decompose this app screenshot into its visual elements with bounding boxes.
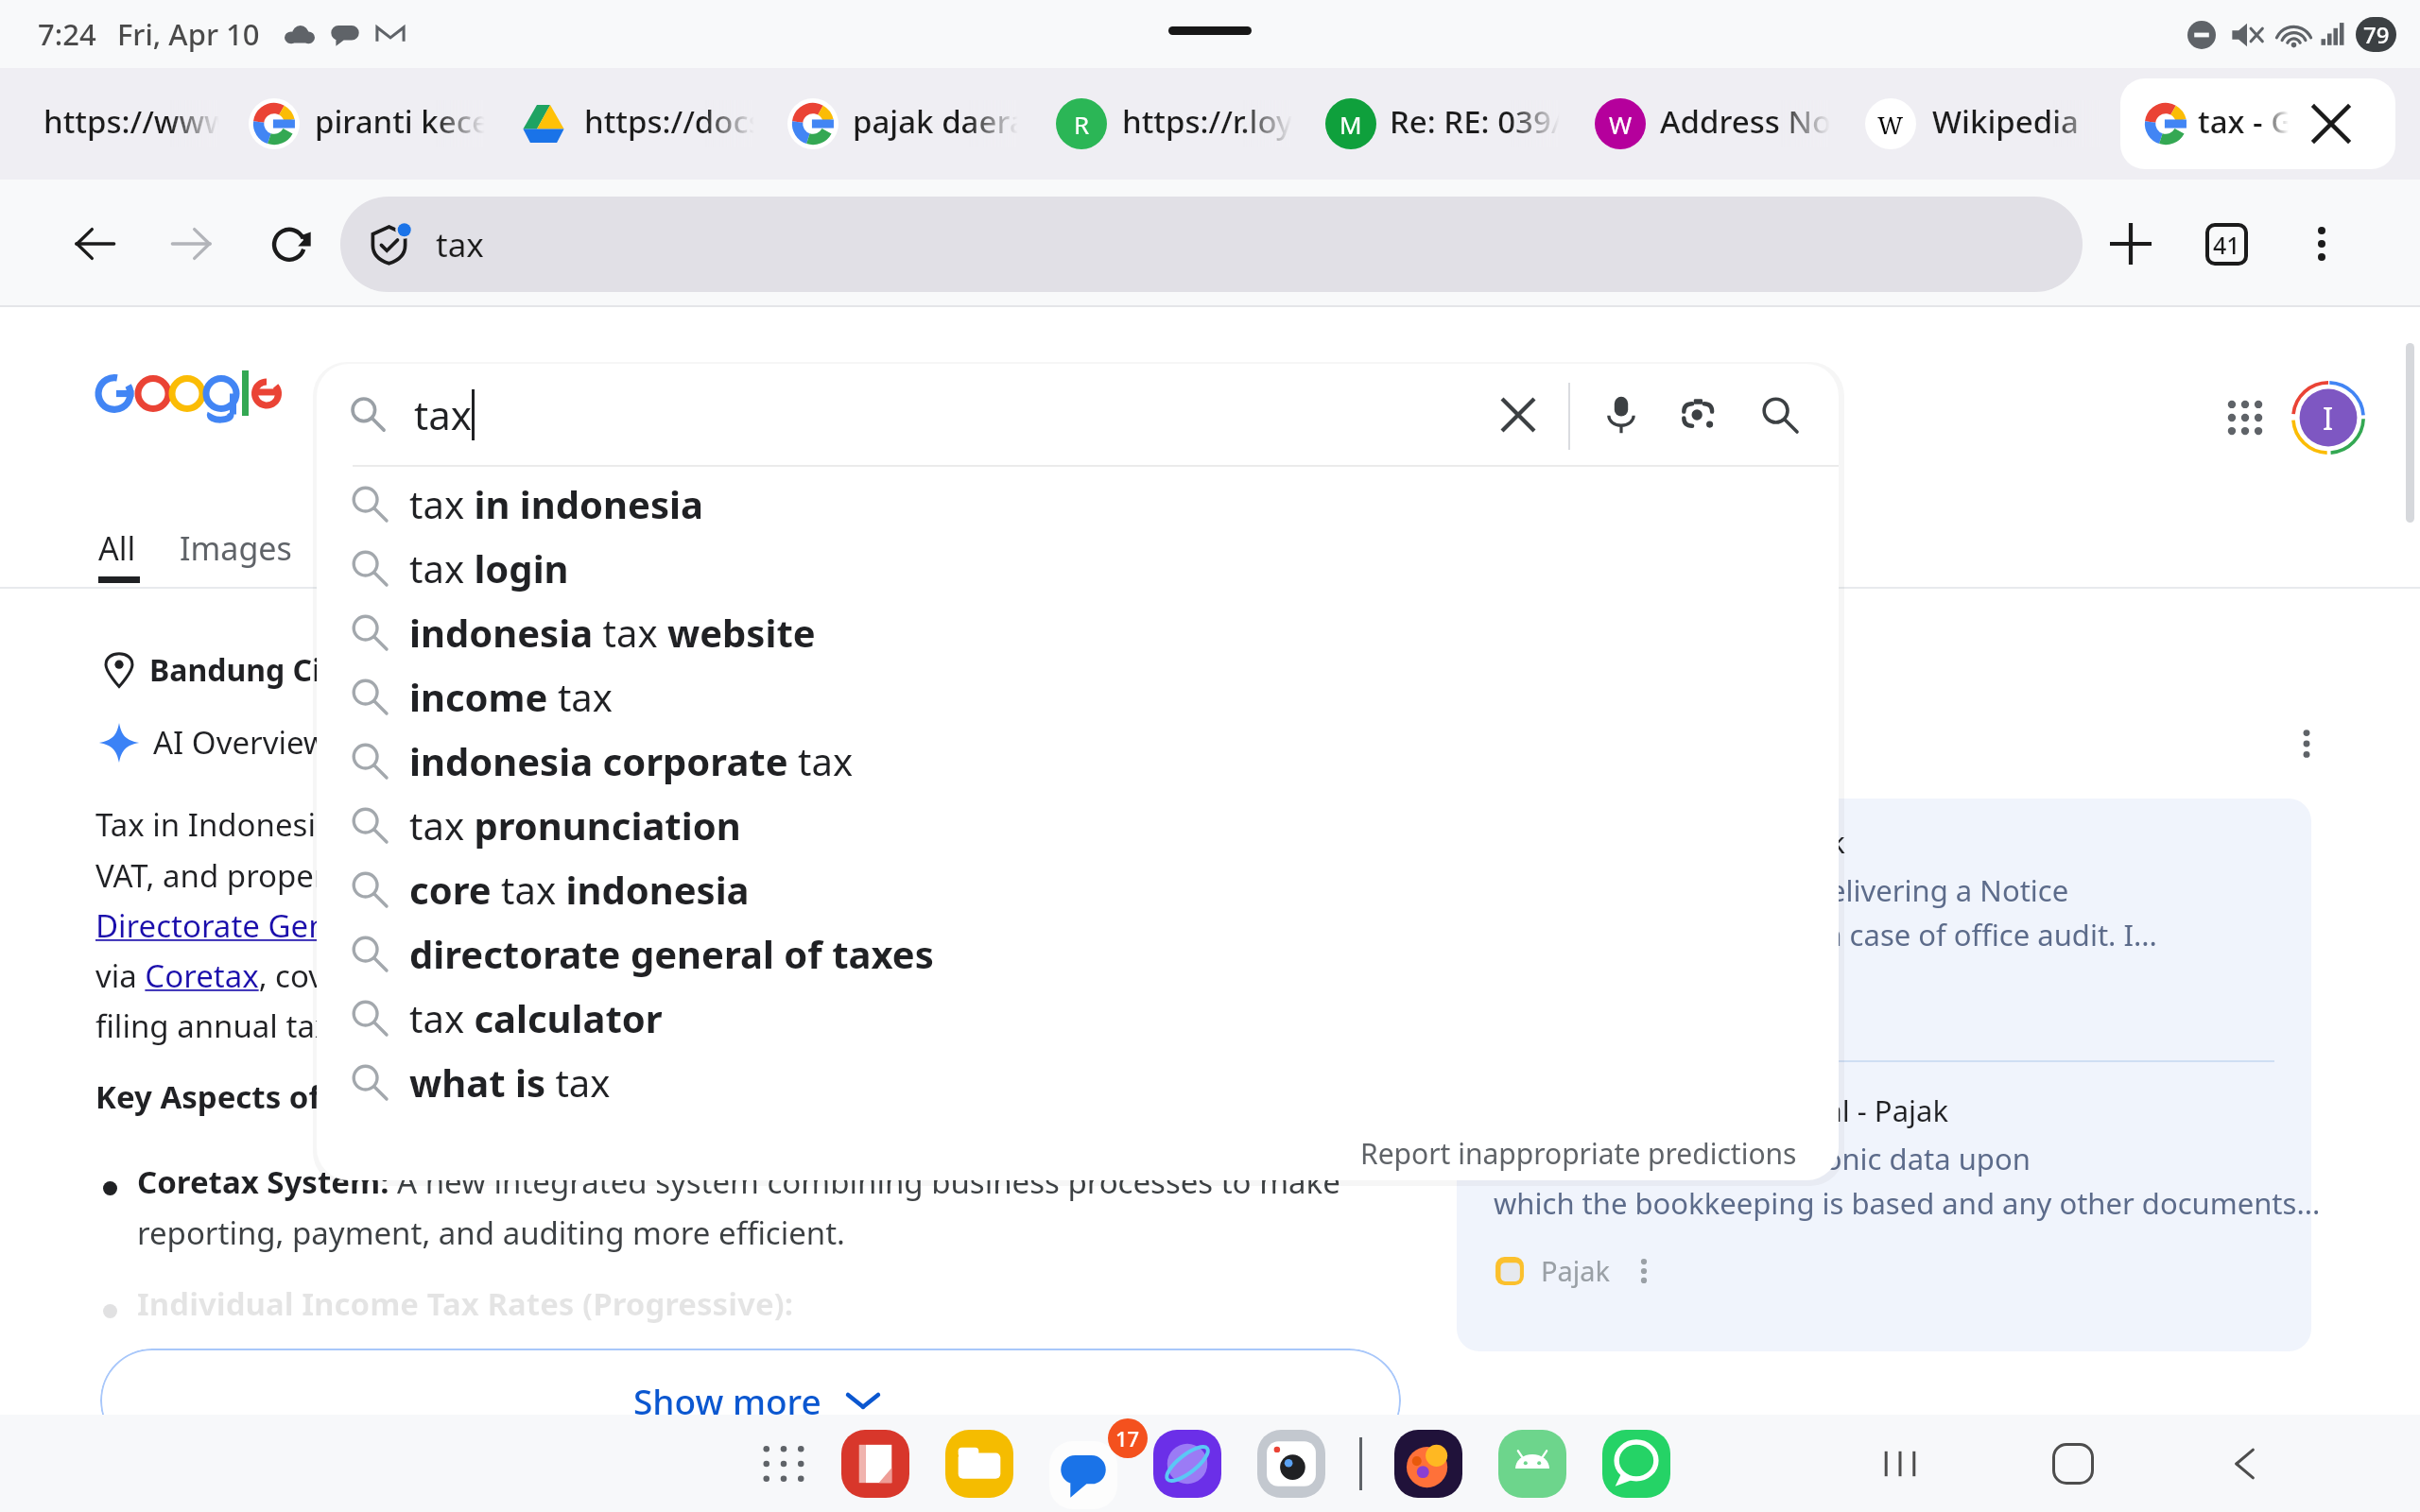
staticText: 7:24 [38,14,96,54]
button[interactable] [497,68,767,180]
button[interactable]: Close tab [2300,93,2362,155]
staticText: 79 [2363,19,2390,50]
button[interactable]: Search by voice [1587,381,1655,449]
staticText: Pajak [1541,1252,1611,1289]
button[interactable]: Home [2031,1421,2116,1506]
staticText: Individual Income Tax Rates (Progressive… [137,1282,794,1325]
staticText: indonesia tax website [409,607,816,658]
button[interactable] [1305,68,1574,180]
staticText: Bandung City, West Java [149,649,513,691]
button[interactable] [228,68,497,180]
staticText: Wikipedia [1932,100,2079,143]
button[interactable]: App [841,1430,909,1498]
button[interactable]: Show more [100,1349,1401,1452]
staticText: Fri, Apr 10 [117,14,260,54]
staticText: R [1074,108,1090,141]
button[interactable]: tax calculator [317,986,1839,1050]
button[interactable]: tax [340,197,2083,292]
button[interactable]: income tax [317,664,1839,729]
staticText: AI Overview [153,721,328,764]
staticText: directorate general of taxes [409,928,934,979]
staticText: Address Not Found Error [1660,100,1830,143]
staticText: tax pronunciation [409,799,741,850]
staticText: Re: RE: 039/0123 Invoice [1390,100,1560,143]
button[interactable]: directorate general of taxes [317,921,1839,986]
staticText: Coretax System: A new integrated system … [137,1160,1479,1253]
button[interactable]: App [1049,1441,1117,1509]
button[interactable]: App [945,1430,1013,1498]
button[interactable] [767,68,1036,180]
button[interactable]: App [1394,1430,1462,1498]
button[interactable]: Back [60,210,129,278]
button[interactable] [1574,68,1843,180]
button[interactable]: App [1257,1430,1325,1498]
button[interactable]: tax login [317,536,1839,600]
staticText: 17 [1115,1424,1140,1452]
staticText: All [98,526,136,570]
staticText: https://www.indonesia.go.id [43,100,219,143]
staticText: Directorate General Pajak [1494,822,1845,862]
staticText: piranti kecerdasan [315,100,485,143]
button[interactable]: More options [2288,210,2356,278]
staticText: income tax [409,671,613,722]
button[interactable]: Clear search [1484,381,1552,449]
staticText: core tax indonesia [409,864,750,915]
button[interactable]: tax in indonesia [317,472,1839,536]
staticText: W [1609,108,1633,141]
button[interactable]: what is tax [317,1050,1839,1114]
staticText: tax [436,222,484,267]
staticText: 41 [2213,229,2240,261]
staticText: pajak daerah bandung [853,100,1018,143]
staticText: Images [180,526,292,570]
button[interactable]: Google Account [2291,381,2365,455]
button[interactable]: indonesia tax website [317,600,1839,664]
staticText: M [1340,108,1362,141]
staticText: indonesia corporate tax [409,735,854,786]
button[interactable]: Search by image [1664,381,1732,449]
button[interactable]: core tax indonesia [317,857,1839,921]
staticText: https://r.loyverse.com [1122,100,1292,143]
button[interactable]: Google apps [2212,385,2278,451]
staticText: Tax Mechanism Individual - Pajak [1494,1091,1948,1130]
staticText: tax login [409,542,569,593]
button[interactable]: About this result [2286,723,2327,765]
button[interactable]: All apps [750,1430,818,1498]
staticText: tax in indonesia [409,478,703,529]
button[interactable]: Report inappropriate predictions [1358,1128,1799,1178]
staticText: Tax in Indonesia includes income tax, VA… [95,803,1438,1046]
button[interactable]: Search [1746,381,1814,449]
button[interactable] [1844,68,2114,180]
button[interactable] [1035,68,1305,180]
button[interactable]: New tab [2097,210,2165,278]
staticText: Show more [633,1377,821,1424]
staticText: ...documents, and electronic data upon w… [1494,1139,2321,1223]
button[interactable]: indonesia corporate tax [317,729,1839,793]
staticText: Field audit begins with delivering a Not… [1494,870,2157,954]
button[interactable]: App [1498,1430,1566,1498]
button[interactable]: App [1602,1430,1670,1498]
staticText: what is tax [409,1057,611,1108]
staticText: tax [414,387,472,441]
button[interactable]: Forward [158,210,226,278]
button[interactable]: Tabs: 41 [2192,210,2260,278]
staticText: tax calculator [409,992,663,1043]
staticText: Key Aspects of Taxation in Indonesia [95,1075,663,1118]
staticText: I [2323,397,2334,439]
button[interactable]: tax pronunciation [317,793,1839,857]
button[interactable]: App [1153,1430,1221,1498]
staticText: tax - Google Search [2198,100,2289,143]
button[interactable]: tax - Google Search [2120,78,2395,169]
button[interactable] [0,68,269,180]
button[interactable]: Recent apps [1858,1421,1943,1506]
button[interactable]: Back [2204,1421,2290,1506]
staticText: W [1877,108,1904,141]
staticText: Report inappropriate predictions [1360,1134,1797,1173]
button[interactable]: Reload [255,210,323,278]
staticText: https://docs.google.com [584,100,754,143]
